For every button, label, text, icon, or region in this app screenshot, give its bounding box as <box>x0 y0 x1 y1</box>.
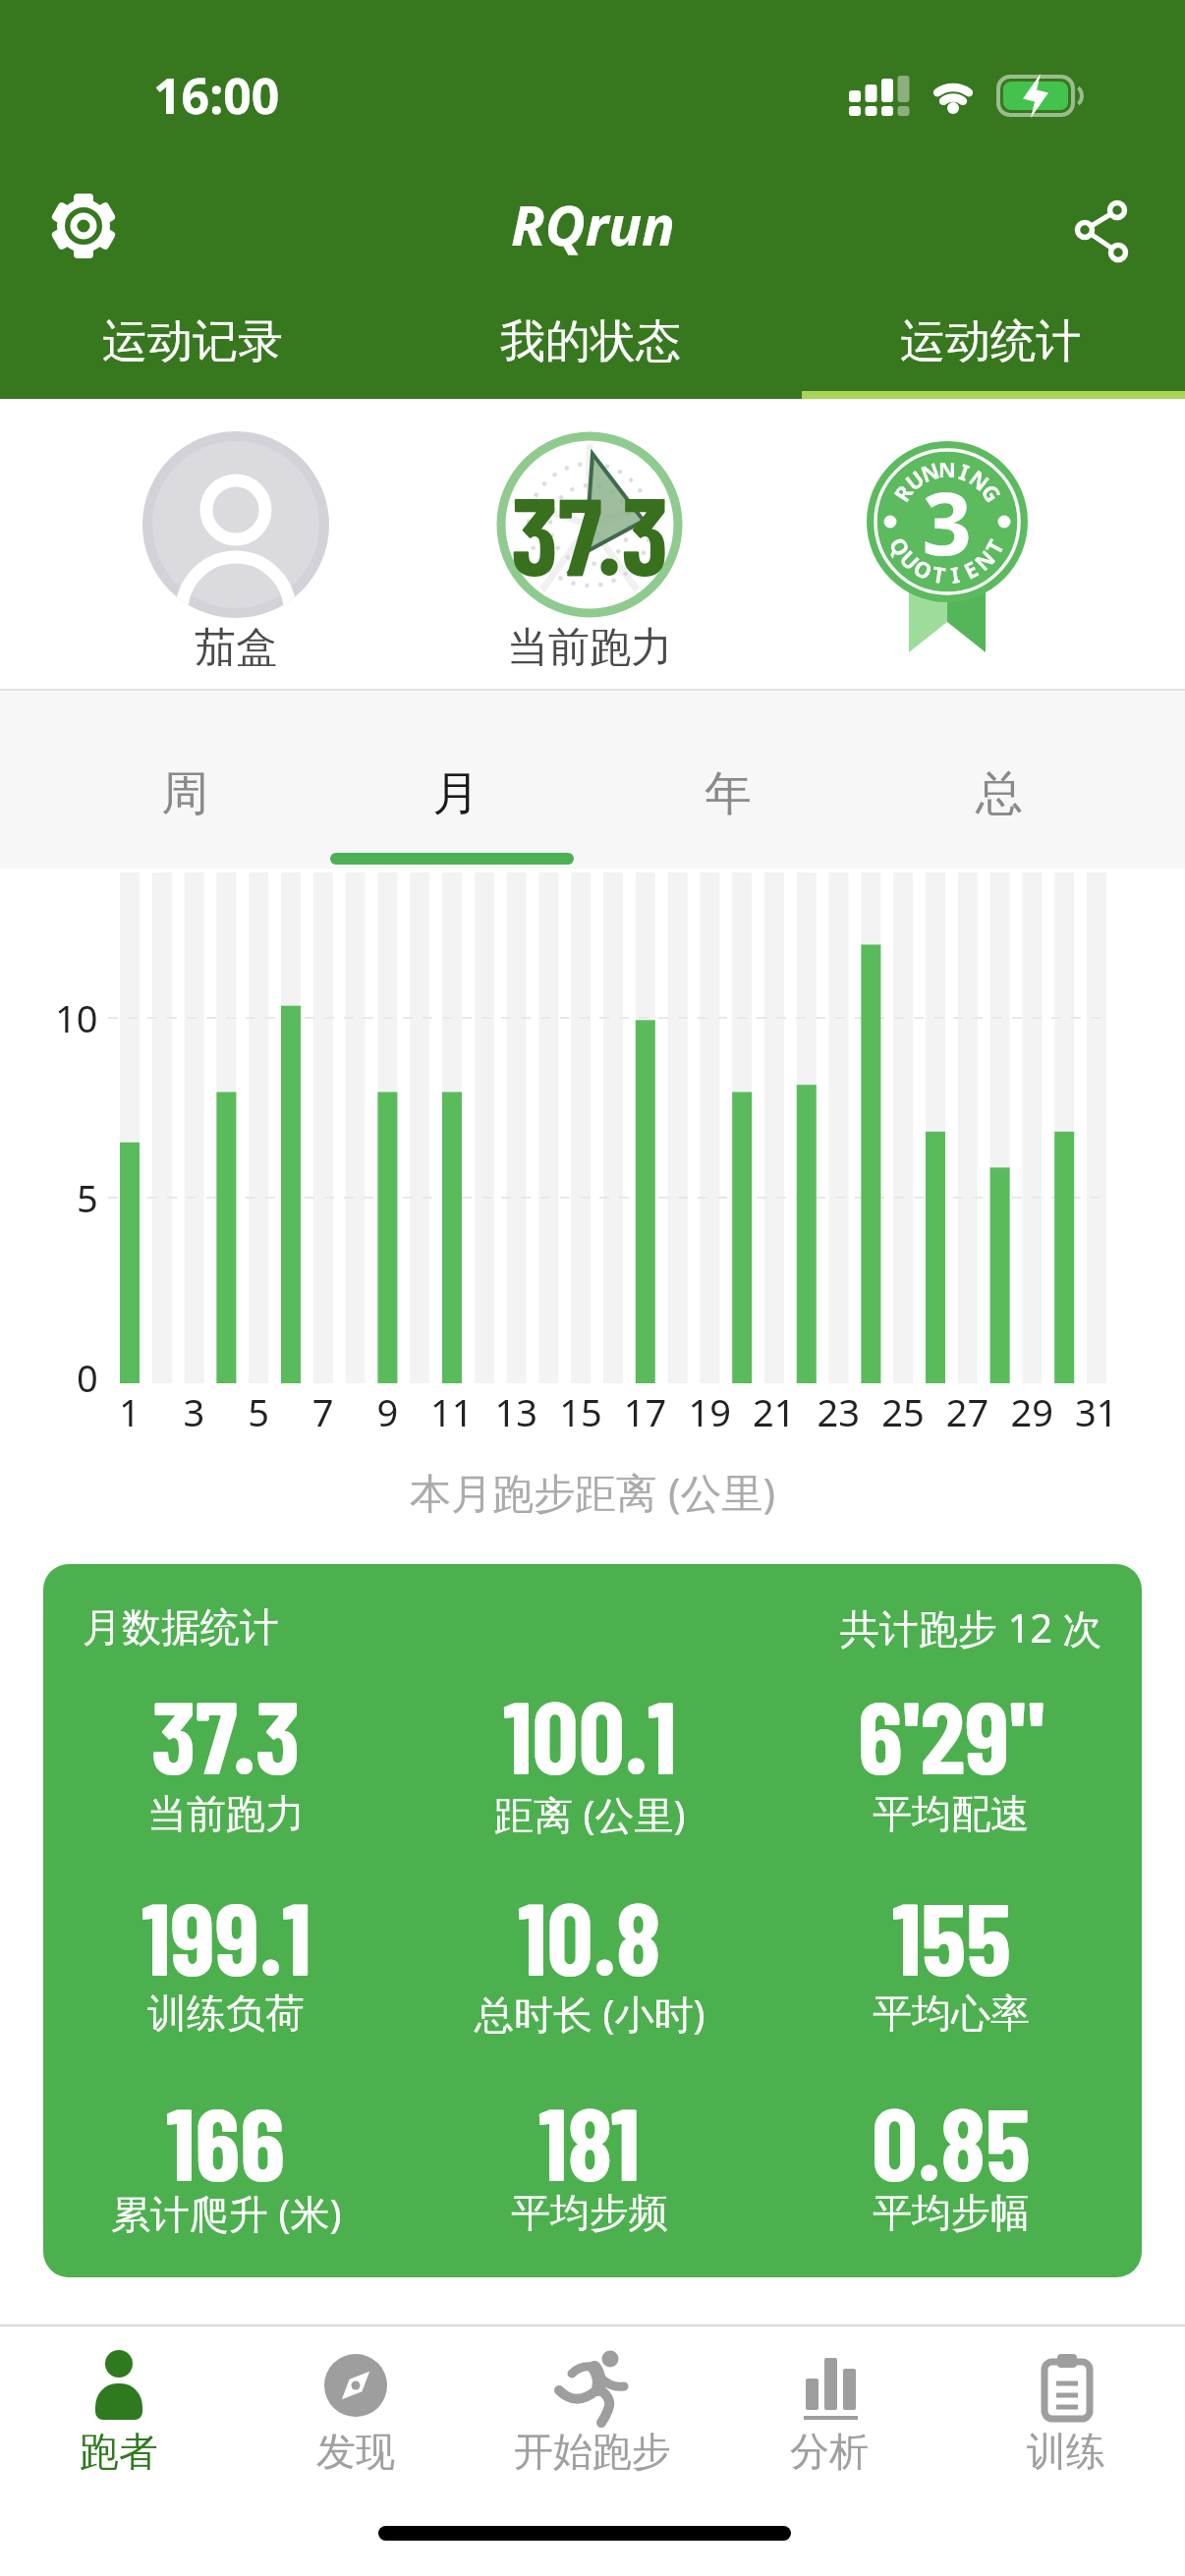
button[interactable]: 训练 <box>948 2338 1184 2476</box>
button[interactable]: 月 <box>161 735 751 853</box>
staticText: 当前跑力 <box>507 622 672 674</box>
button[interactable]: 跑者 <box>1 2338 237 2476</box>
staticText: RQrun <box>511 187 675 261</box>
button[interactable]: 运动统计 <box>696 283 1185 401</box>
staticText: 199.1 <box>141 1874 311 1991</box>
staticText: 周 <box>161 764 208 823</box>
staticText: 跑者 <box>80 2427 158 2476</box>
staticText: 共计跑步 12 次 <box>840 1600 1102 1654</box>
button[interactable]: 运动记录 <box>0 283 487 401</box>
staticText: 平均心率 <box>873 1988 1030 2038</box>
staticText: 0.85 <box>872 2079 1031 2197</box>
button[interactable] <box>39 182 130 272</box>
staticText: 当前跑力 <box>147 1789 305 1838</box>
staticText: 181 <box>538 2079 641 2197</box>
button[interactable] <box>145 434 326 615</box>
button[interactable] <box>43 1564 1142 2277</box>
button[interactable]: 周 <box>0 735 480 853</box>
staticText: 开始跑步 <box>514 2427 671 2476</box>
button[interactable]: 年 <box>433 735 1023 853</box>
staticText: 茄盒 <box>195 622 277 674</box>
button[interactable] <box>1053 185 1144 275</box>
button[interactable]: 发现 <box>238 2338 474 2476</box>
staticText: 距离 (公里) <box>494 1787 686 1841</box>
button[interactable]: 分析 <box>711 2338 947 2476</box>
staticText: 训练 <box>1027 2427 1105 2476</box>
staticText: 166 <box>166 2079 286 2197</box>
staticText: 运动统计 <box>900 313 1081 370</box>
staticText: 平均步幅 <box>873 2188 1030 2237</box>
staticText: 10.8 <box>518 1874 661 1991</box>
button[interactable]: 开始跑步 <box>475 2338 710 2476</box>
staticText: 月 <box>432 764 480 823</box>
staticText: 月数据统计 <box>83 1602 279 1652</box>
staticText: 16:00 <box>153 62 280 129</box>
staticText: 6'29" <box>858 1672 1045 1790</box>
staticText: 累计爬升 (米) <box>111 2186 342 2240</box>
button[interactable] <box>867 441 1028 602</box>
staticText: 平均步频 <box>511 2188 668 2237</box>
staticText: 发现 <box>316 2427 395 2476</box>
staticText: 分析 <box>790 2427 869 2476</box>
staticText: 总时长 (小时) <box>475 1987 705 2041</box>
button[interactable] <box>499 434 680 615</box>
staticText: 总 <box>976 764 1023 823</box>
staticText: 年 <box>705 764 752 823</box>
staticText: 平均配速 <box>873 1789 1030 1838</box>
staticText: 运动记录 <box>102 313 283 370</box>
staticText: 训练负荷 <box>147 1988 305 2038</box>
staticText: 37.3 <box>151 1672 301 1790</box>
staticText: 我的状态 <box>500 313 681 370</box>
staticText: 155 <box>892 1874 1011 1991</box>
staticText: 本月跑步距离 (公里) <box>410 1464 776 1520</box>
button[interactable]: 我的状态 <box>296 283 885 401</box>
staticText: 37.3 <box>511 468 669 586</box>
button[interactable]: 总 <box>705 735 1185 853</box>
staticText: 100.1 <box>503 1672 677 1790</box>
